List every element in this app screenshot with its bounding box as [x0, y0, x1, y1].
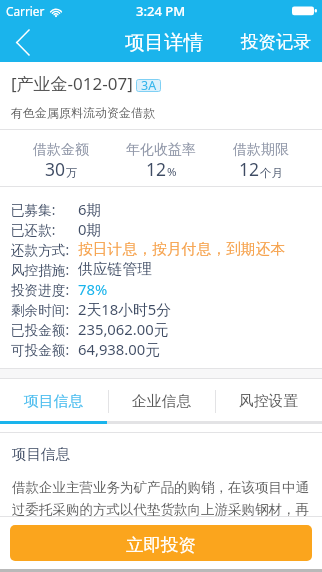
staticText: % — [167, 164, 177, 180]
staticText: 供应链管理 — [78, 260, 152, 279]
staticText: 可投金额: — [11, 340, 70, 359]
staticText: 12 — [239, 157, 260, 181]
button[interactable]: 项目信息 — [0, 379, 108, 424]
staticText: Carrier — [6, 3, 45, 19]
staticText: 已募集: — [11, 200, 56, 219]
staticText: 投资记录 — [241, 31, 311, 53]
staticText: 风控设置 — [239, 392, 299, 411]
staticText: 剩余时间: — [11, 300, 70, 319]
staticText: 万 — [66, 166, 78, 180]
staticText: 78% — [78, 279, 108, 299]
staticText: 235,062.00元 — [78, 319, 169, 339]
staticText: 64,938.00元 — [78, 339, 160, 359]
staticText: 投资进度: — [11, 280, 70, 299]
staticText: 已投金额: — [11, 320, 70, 339]
staticText: 借款企业主营业务为矿产品的购销，在该项目中通过委托采购的方式以代垫货款向上游采购… — [12, 479, 310, 516]
staticText: 3:24 PM — [136, 2, 186, 20]
staticText: 2天18小时5分 — [78, 299, 172, 319]
staticText: 12 — [146, 157, 167, 181]
staticText: 借款期限 — [233, 141, 289, 159]
staticText: 立即投资 — [126, 534, 196, 556]
staticText: 企业信息 — [132, 392, 192, 411]
staticText: 项目详情 — [125, 30, 203, 55]
staticText: [产业金-012-07] — [11, 72, 133, 95]
button[interactable]: 投资记录 — [230, 22, 322, 62]
button[interactable]: 立即投资 — [10, 525, 312, 561]
staticText: 项目信息 — [24, 392, 84, 411]
staticText: 个月 — [260, 166, 283, 180]
staticText: 6期 — [78, 199, 102, 219]
button[interactable]: 风控设置 — [215, 379, 322, 424]
staticText: 还款方式: — [11, 240, 70, 259]
staticText: 30 — [45, 157, 66, 181]
button[interactable]: Back — [2, 22, 42, 62]
staticText: 3A — [141, 79, 157, 90]
staticText: 风控措施: — [11, 260, 70, 279]
staticText: 借款金额 — [33, 141, 89, 159]
staticText: 按日计息，按月付息，到期还本 — [78, 240, 286, 259]
staticText: 已还款: — [11, 220, 56, 239]
staticText: 项目信息 — [12, 445, 70, 463]
staticText: 有色金属原料流动资金借款 — [11, 105, 155, 120]
staticText: 年化收益率 — [126, 141, 196, 159]
button[interactable]: 企业信息 — [108, 379, 215, 424]
staticText: 0期 — [78, 219, 102, 239]
